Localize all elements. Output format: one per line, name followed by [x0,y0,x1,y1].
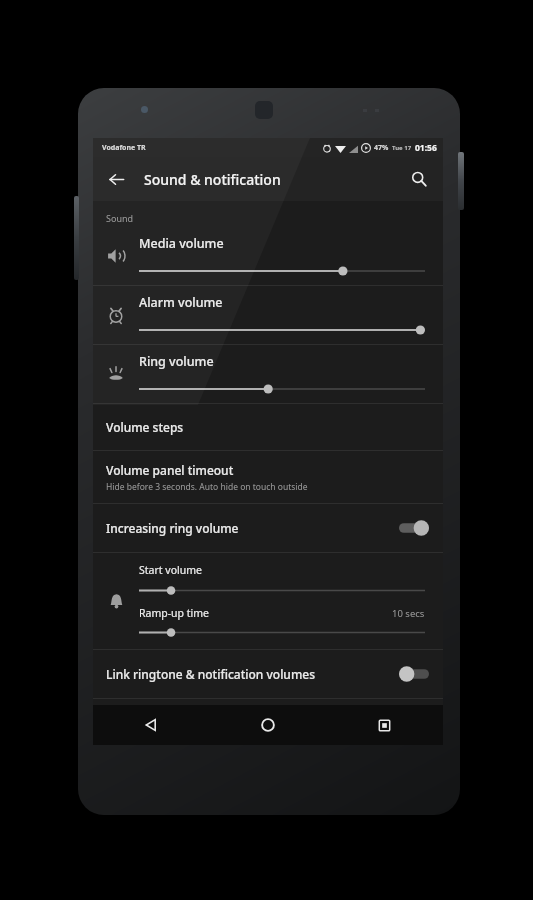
staticText: Hide before 3 seconds. Auto hide on touc… [106,481,308,493]
staticText: Increasing ring volume [106,520,399,536]
staticText: Sound & notification [144,170,281,189]
button[interactable]: Increasing ring volume [93,504,443,552]
staticText: Alarm volume [139,294,223,311]
staticText: Volume steps [106,419,184,435]
button[interactable]: Home [209,705,326,745]
button[interactable]: Ring volume [93,345,443,403]
button[interactable]: Back [99,162,133,196]
button[interactable]: Link ringtone & notification volumes [93,650,443,698]
staticText: Sound [106,212,134,224]
staticText: Volume panel timeout [106,462,234,478]
staticText: Tue 17 [392,144,412,152]
button[interactable]: Alarm volume [93,286,443,344]
staticText: Link ringtone & notification volumes [106,666,399,682]
staticText: Vodafone TR [102,143,146,153]
staticText: Start volume [139,563,202,577]
staticText: 01:56 [415,142,437,154]
staticText: Ramp-up time [139,606,392,620]
button[interactable]: Volume steps [93,404,443,450]
button[interactable]: Back [93,705,209,745]
staticText: 10 secs [392,607,425,620]
button[interactable]: Volume panel timeout [93,451,443,503]
staticText: 47% [374,143,389,153]
button[interactable]: Search [402,162,436,196]
staticText: Ring volume [139,353,214,370]
button[interactable]: Recent apps [326,705,443,745]
button[interactable]: Media volume [93,227,443,285]
staticText: Media volume [139,235,224,252]
